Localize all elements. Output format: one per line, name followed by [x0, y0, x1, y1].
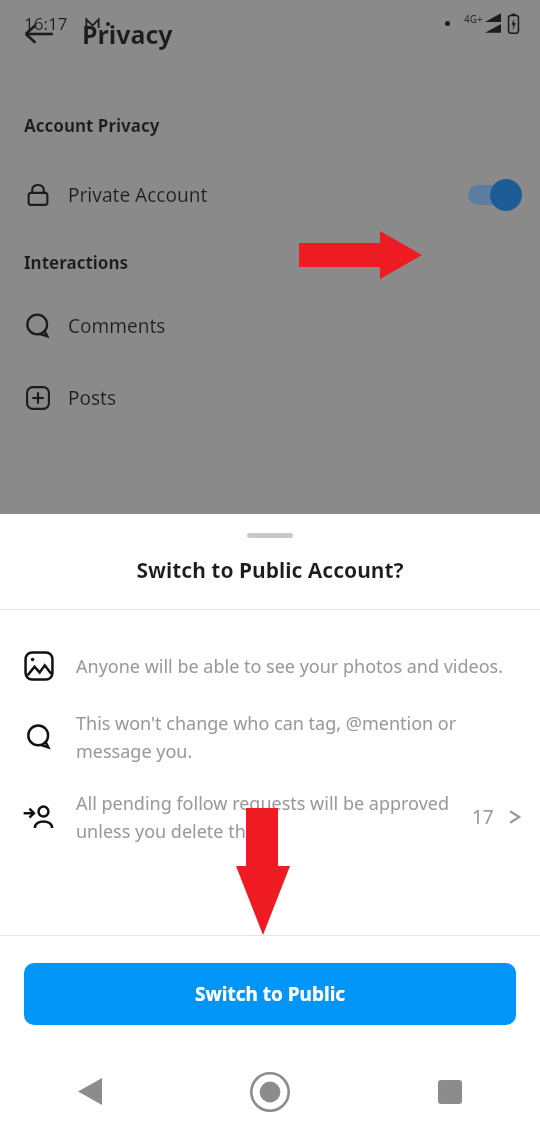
button[interactable]: All pending follow requests will be appr…: [0, 791, 540, 843]
button[interactable]: Switch to Public: [24, 963, 516, 1025]
staticText: Comments: [68, 313, 166, 339]
staticText: Account Privacy: [24, 114, 160, 137]
button[interactable]: Private Account: [0, 169, 540, 221]
button[interactable]: Back: [10, 5, 68, 63]
staticText: Switch to Public: [195, 981, 346, 1007]
button[interactable]: This won't change who can tag, @mention …: [0, 711, 540, 763]
button[interactable]: Home: [180, 1060, 360, 1123]
staticText: All pending follow requests will be appr…: [76, 791, 464, 843]
staticText: Interactions: [24, 251, 129, 274]
staticText: This won't change who can tag, @mention …: [76, 711, 522, 763]
staticText: 16:17: [24, 12, 68, 35]
staticText: Posts: [68, 385, 117, 411]
button[interactable]: Recents: [360, 1060, 540, 1123]
button[interactable]: Anyone will be able to see your photos a…: [0, 649, 540, 683]
button[interactable]: Comments: [0, 304, 540, 348]
staticText: Anyone will be able to see your photos a…: [76, 654, 504, 679]
staticText: Privacy: [82, 17, 173, 51]
staticText: 17: [472, 804, 494, 830]
button[interactable]: Back: [0, 1060, 180, 1123]
staticText: Private Account: [68, 182, 208, 208]
staticText: 4G+: [464, 12, 483, 26]
staticText: Switch to Public Account?: [136, 556, 404, 585]
button[interactable]: Posts: [0, 376, 540, 420]
